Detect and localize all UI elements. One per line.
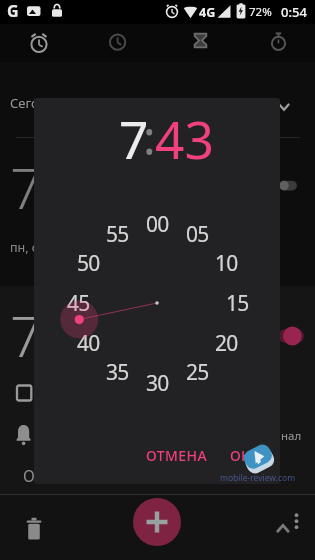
- staticText: 05: [186, 220, 209, 249]
- staticText: ОК: [230, 446, 251, 465]
- staticText: 10: [215, 249, 238, 278]
- staticText: 7:43: [10, 149, 120, 219]
- staticText: 4G: [199, 4, 216, 21]
- staticText: 72%: [249, 4, 272, 20]
- staticText: 7:43: [10, 297, 120, 367]
- staticText: ОТМЕНА: [146, 446, 208, 465]
- button[interactable]: [288, 508, 306, 536]
- button[interactable]: [79, 26, 158, 62]
- staticText: Сегодня: [10, 94, 63, 112]
- staticText: 00: [146, 210, 169, 239]
- staticText: 20: [215, 329, 238, 358]
- staticText: Описание: [23, 465, 98, 486]
- button[interactable]: ОК: [160, 420, 315, 490]
- button[interactable]: [24, 512, 44, 540]
- staticText: :: [143, 105, 156, 169]
- staticText: mobile-review.com: [220, 472, 296, 484]
- button[interactable]: [236, 26, 315, 62]
- button[interactable]: ОТМЕНА: [97, 420, 257, 490]
- button[interactable]: [158, 26, 237, 62]
- button[interactable]: [0, 26, 79, 62]
- staticText: 40: [77, 329, 100, 358]
- staticText: G: [7, 0, 19, 22]
- staticText: 45: [67, 289, 90, 318]
- staticText: 15: [226, 289, 249, 318]
- staticText: 50: [77, 249, 100, 278]
- staticText: 30: [146, 369, 169, 398]
- button[interactable]: [133, 498, 181, 546]
- button[interactable]: [276, 324, 306, 348]
- staticText: 55: [106, 220, 129, 249]
- staticText: 43: [155, 104, 214, 174]
- staticText: 35: [106, 358, 129, 387]
- button[interactable]: [272, 96, 296, 118]
- staticText: нал: [281, 428, 302, 444]
- staticText: 7: [119, 104, 149, 174]
- staticText: пн, ср, чт: [10, 239, 66, 256]
- staticText: 0:54: [281, 3, 307, 21]
- staticText: 25: [186, 358, 209, 387]
- button[interactable]: [270, 518, 294, 538]
